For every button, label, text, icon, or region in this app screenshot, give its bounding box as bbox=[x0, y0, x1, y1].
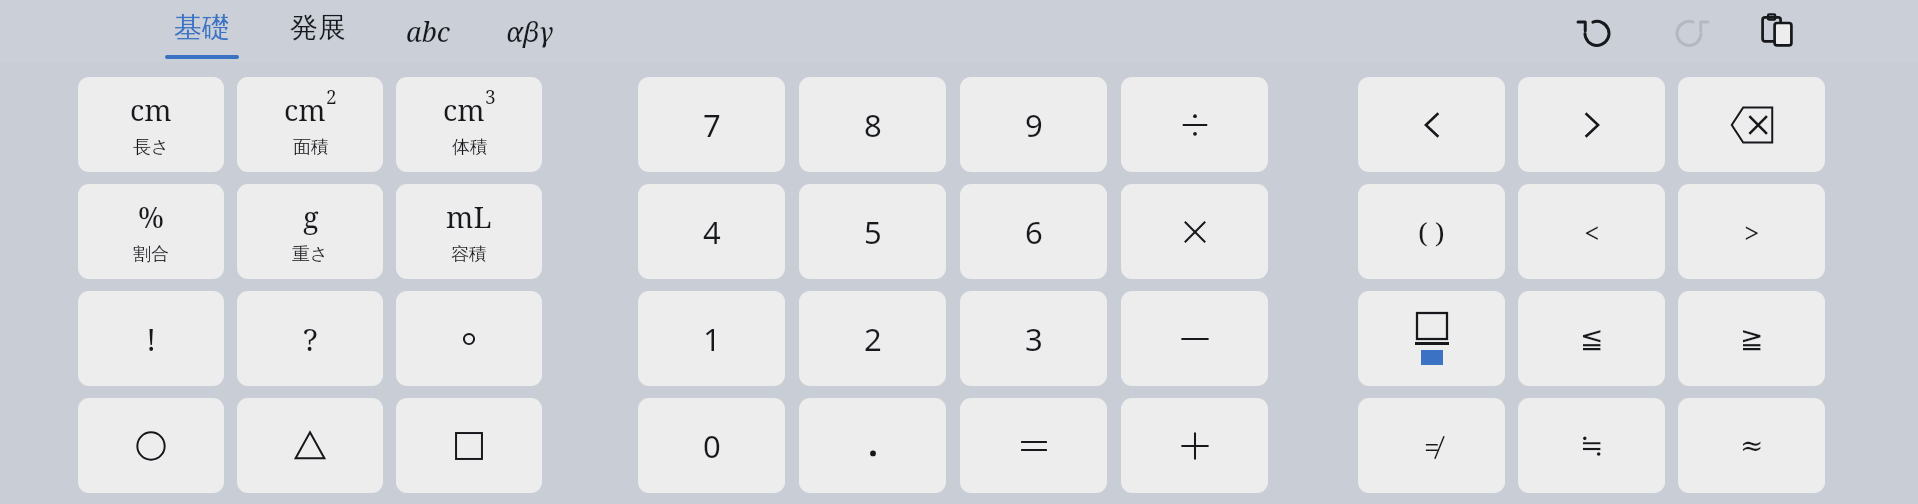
other: Move cursor right bbox=[1569, 102, 1615, 148]
staticText: 0 bbox=[703, 425, 721, 467]
button[interactable] bbox=[78, 398, 224, 493]
staticText: 3 bbox=[1025, 318, 1043, 360]
button[interactable]: 6 bbox=[960, 184, 1107, 279]
button[interactable]: ! bbox=[78, 291, 224, 386]
button[interactable] bbox=[396, 398, 542, 493]
staticText: abc bbox=[406, 13, 450, 50]
button[interactable]: 9 bbox=[960, 77, 1107, 172]
button[interactable]: Move cursor right bbox=[1518, 77, 1665, 172]
button[interactable]: 0 bbox=[638, 398, 785, 493]
button[interactable]: cm bbox=[237, 77, 383, 172]
other: Fraction bbox=[1406, 313, 1458, 365]
button[interactable] bbox=[799, 398, 946, 493]
button[interactable]: 5 bbox=[799, 184, 946, 279]
staticText: 9 bbox=[1025, 104, 1043, 146]
staticText: 4 bbox=[703, 211, 721, 253]
staticText: % bbox=[138, 197, 164, 236]
other: Move cursor left bbox=[1409, 102, 1455, 148]
button[interactable]: Redo bbox=[1656, 0, 1722, 62]
button[interactable] bbox=[396, 291, 542, 386]
staticText: αβγ bbox=[506, 13, 554, 50]
button[interactable]: mL bbox=[396, 184, 542, 279]
staticText: 体積 bbox=[452, 136, 488, 159]
button[interactable] bbox=[1121, 77, 1268, 172]
staticText: 面積 bbox=[293, 136, 329, 159]
button[interactable]: 7 bbox=[638, 77, 785, 172]
staticText: 2 bbox=[326, 84, 337, 110]
button[interactable]: Fraction bbox=[1358, 291, 1505, 386]
other: Backspace bbox=[1724, 97, 1780, 153]
staticText: ≈ bbox=[1740, 429, 1764, 462]
button[interactable] bbox=[960, 398, 1107, 493]
staticText: cm bbox=[443, 90, 485, 129]
button[interactable]: % bbox=[78, 184, 224, 279]
button[interactable] bbox=[1121, 398, 1268, 493]
button[interactable] bbox=[1121, 184, 1268, 279]
staticText: 容積 bbox=[451, 243, 487, 266]
staticText: 5 bbox=[864, 211, 882, 253]
button[interactable]: g bbox=[237, 184, 383, 279]
button[interactable]: 発展 bbox=[272, 0, 364, 62]
button[interactable]: < bbox=[1518, 184, 1665, 279]
staticText: ? bbox=[303, 318, 318, 360]
staticText: 8 bbox=[864, 104, 882, 146]
staticText: 発展 bbox=[290, 10, 346, 45]
button[interactable]: 4 bbox=[638, 184, 785, 279]
staticText: ( ) bbox=[1418, 213, 1445, 251]
staticText: 重さ bbox=[292, 243, 329, 266]
staticText: ≒ bbox=[1580, 429, 1604, 462]
staticText: 7 bbox=[703, 104, 721, 146]
staticText: < bbox=[1584, 213, 1600, 251]
button[interactable]: 2 bbox=[799, 291, 946, 386]
button[interactable]: ≧ bbox=[1678, 291, 1825, 386]
staticText: > bbox=[1744, 213, 1760, 251]
staticText: mL bbox=[446, 197, 492, 236]
button[interactable]: 1 bbox=[638, 291, 785, 386]
button[interactable]: Backspace bbox=[1678, 77, 1825, 172]
button[interactable]: Move cursor left bbox=[1358, 77, 1505, 172]
button[interactable]: cm bbox=[396, 77, 542, 172]
staticText: 6 bbox=[1025, 211, 1043, 253]
staticText: cm bbox=[130, 90, 172, 129]
staticText: ≠ bbox=[1424, 427, 1440, 465]
button[interactable]: 3 bbox=[960, 291, 1107, 386]
button[interactable]: 8 bbox=[799, 77, 946, 172]
button[interactable]: 基礎 bbox=[156, 0, 248, 62]
staticText: cm bbox=[284, 90, 326, 129]
button[interactable]: αβγ bbox=[480, 0, 580, 62]
button[interactable]: Paste from clipboard bbox=[1744, 0, 1810, 62]
staticText: 基礎 bbox=[174, 10, 230, 45]
staticText: ! bbox=[146, 318, 157, 360]
button[interactable]: cm bbox=[78, 77, 224, 172]
button[interactable]: ( ) bbox=[1358, 184, 1505, 279]
staticText: ≧ bbox=[1740, 322, 1764, 355]
staticText: g bbox=[303, 197, 319, 236]
staticText: 長さ bbox=[133, 136, 170, 159]
staticText: 2 bbox=[864, 318, 882, 360]
button[interactable] bbox=[237, 398, 383, 493]
button[interactable]: abc bbox=[384, 0, 472, 62]
staticText: 3 bbox=[485, 84, 496, 110]
button[interactable]: ≠ bbox=[1358, 398, 1505, 493]
staticText: 割合 bbox=[133, 243, 169, 266]
button[interactable]: > bbox=[1678, 184, 1825, 279]
staticText: ≦ bbox=[1580, 322, 1604, 355]
staticText: 1 bbox=[703, 318, 721, 360]
button[interactable]: ≈ bbox=[1678, 398, 1825, 493]
button[interactable]: Undo bbox=[1564, 0, 1630, 62]
button[interactable]: ? bbox=[237, 291, 383, 386]
button[interactable] bbox=[1121, 291, 1268, 386]
button[interactable]: ≒ bbox=[1518, 398, 1665, 493]
button[interactable]: ≦ bbox=[1518, 291, 1665, 386]
